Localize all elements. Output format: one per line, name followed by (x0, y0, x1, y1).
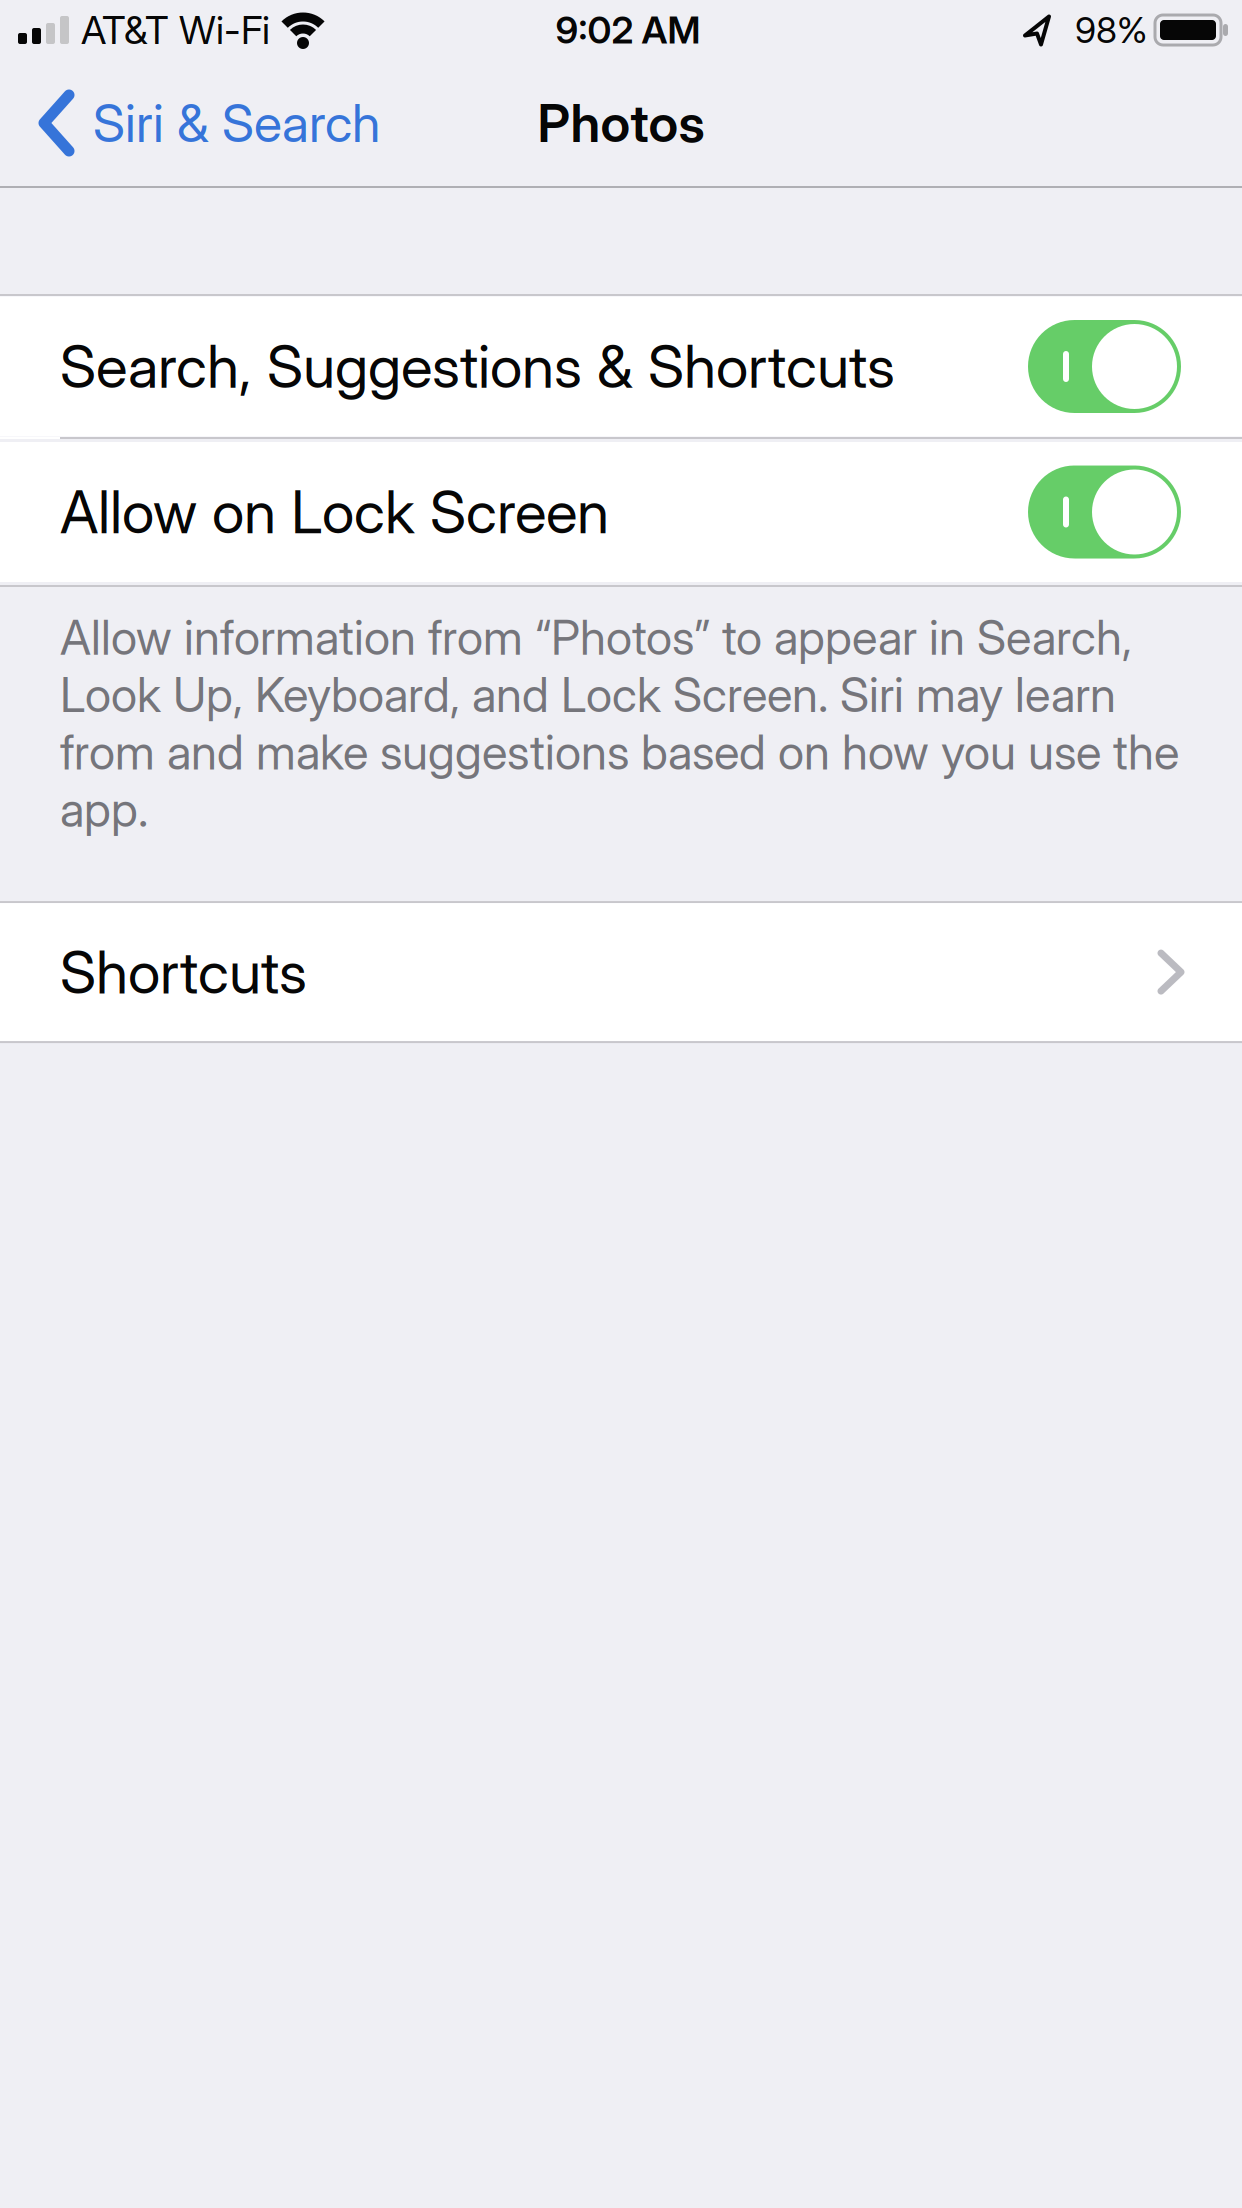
button[interactable]: Search, Suggestions & Shortcuts (1028, 320, 1181, 413)
staticText: Photos (537, 91, 704, 154)
staticText: AT&T Wi-Fi (81, 7, 270, 53)
button[interactable]: Shortcuts (0, 903, 1242, 1041)
staticText: from and make suggestions based on how y… (60, 723, 1179, 781)
staticText: Shortcuts (60, 937, 307, 1008)
staticText: Allow information from “Photos” to appea… (60, 609, 1132, 666)
button[interactable]: Allow on Lock Screen (1028, 465, 1181, 558)
staticText: 98% (1075, 8, 1147, 52)
button[interactable]: Siri & Search (0, 90, 380, 156)
staticText: Siri & Search (93, 91, 380, 154)
staticText: 9:02 AM (555, 7, 700, 53)
staticText: Look Up, Keyboard, and Lock Screen. Siri… (60, 666, 1116, 724)
staticText: app. (60, 781, 148, 838)
staticText: Search, Suggestions & Shortcuts (60, 331, 895, 402)
staticText: Allow on Lock Screen (60, 476, 609, 547)
